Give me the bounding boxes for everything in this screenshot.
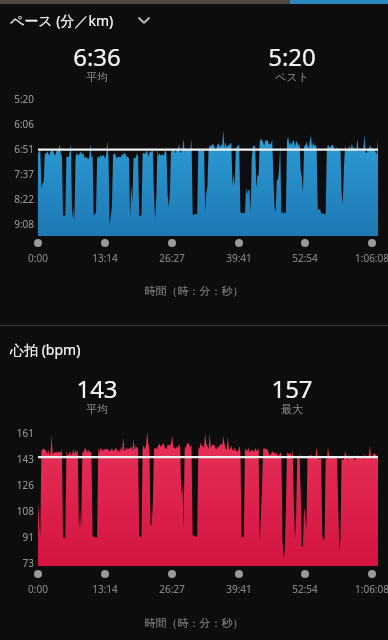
staticText: 1:06:08 — [338, 251, 388, 265]
staticText: 時間（時：分：秒） — [0, 616, 388, 630]
staticText: 9:08 — [2, 217, 34, 231]
staticText: 13:14 — [71, 582, 139, 596]
staticText: 52:54 — [271, 251, 339, 265]
staticText: 39:41 — [205, 582, 273, 596]
staticText: 7:37 — [2, 167, 34, 181]
staticText: ペース (分／km) — [10, 11, 114, 30]
button[interactable]: 心拍 (bpm) — [0, 336, 200, 362]
staticText: 1:06:08 — [338, 582, 388, 596]
staticText: 平均 — [27, 70, 167, 84]
staticText: 73 — [2, 556, 34, 570]
staticText: 5:20 — [222, 40, 362, 73]
staticText: 26:27 — [138, 251, 206, 265]
staticText: ベスト — [222, 70, 362, 84]
staticText: 52:54 — [271, 582, 339, 596]
staticText: 161 — [2, 426, 34, 440]
staticText: 0:00 — [4, 582, 72, 596]
button[interactable]: ペース (分／km) — [0, 7, 200, 33]
staticText: 143 — [2, 452, 34, 466]
other: Change metric — [136, 12, 152, 28]
staticText: 26:27 — [138, 582, 206, 596]
staticText: 39:41 — [205, 251, 273, 265]
staticText: 5:20 — [2, 92, 34, 106]
staticText: 6:51 — [2, 142, 34, 156]
staticText: 最大 — [222, 402, 362, 416]
staticText: 13:14 — [71, 251, 139, 265]
staticText: 時間（時：分：秒） — [0, 284, 388, 298]
staticText: 6:36 — [27, 40, 167, 73]
staticText: 108 — [2, 504, 34, 518]
staticText: 126 — [2, 478, 34, 492]
staticText: 157 — [222, 372, 362, 405]
staticText: 143 — [27, 372, 167, 405]
staticText: 8:22 — [2, 192, 34, 206]
staticText: 平均 — [27, 402, 167, 416]
staticText: 心拍 (bpm) — [10, 340, 81, 359]
staticText: 0:00 — [4, 251, 72, 265]
staticText: 6:06 — [2, 117, 34, 131]
staticText: 91 — [2, 530, 34, 544]
